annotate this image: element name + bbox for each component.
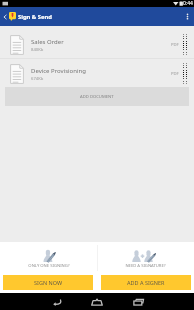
button[interactable]: Device Provisioning bbox=[0, 59, 194, 87]
staticText: Sign & Send bbox=[18, 13, 52, 21]
staticText: ONLY ONE SIGNING? bbox=[28, 263, 70, 269]
staticText: Sales Order bbox=[31, 38, 64, 46]
staticText: 840Kb bbox=[31, 47, 44, 53]
button[interactable]: Back bbox=[45, 293, 69, 310]
button[interactable]: Navigate up bbox=[0, 7, 9, 26]
staticText: Device Provisioning bbox=[31, 67, 86, 75]
button[interactable]: SIGN NOW bbox=[3, 275, 93, 290]
button[interactable]: ONLY ONE SIGNING? bbox=[0, 242, 97, 273]
staticText: SIGN NOW bbox=[34, 279, 63, 286]
button[interactable]: Recent apps bbox=[126, 293, 150, 310]
staticText: 674Kb bbox=[31, 76, 44, 82]
button[interactable]: More options bbox=[181, 7, 194, 26]
staticText: PDF bbox=[171, 42, 179, 48]
button[interactable]: ADD DOCUMENT bbox=[5, 87, 189, 106]
button[interactable]: Home bbox=[85, 293, 109, 310]
button[interactable]: Sales Order bbox=[0, 30, 194, 58]
staticText: 0:44 bbox=[183, 0, 193, 7]
staticText: NEED A SIGNATURE? bbox=[125, 263, 166, 269]
button[interactable]: ADD A SIGNER bbox=[101, 275, 191, 290]
staticText: ADD A SIGNER bbox=[127, 279, 165, 286]
staticText: ADD DOCUMENT bbox=[80, 94, 114, 100]
staticText: PDF bbox=[171, 71, 179, 77]
button[interactable]: NEED A SIGNATURE? bbox=[97, 242, 194, 273]
